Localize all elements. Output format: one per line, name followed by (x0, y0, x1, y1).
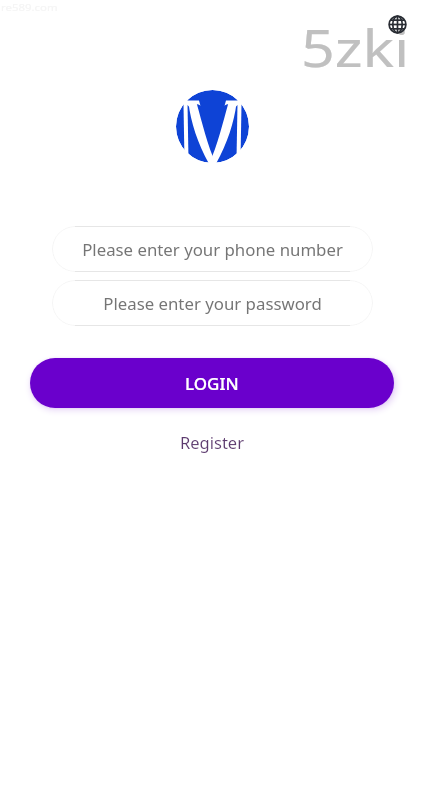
button[interactable]: Language (385, 12, 410, 37)
staticText: LOGIN (185, 372, 239, 395)
staticText: 5zki (301, 13, 410, 82)
button[interactable]: Please enter your phone number (52, 226, 373, 272)
staticText: Please enter your password (103, 292, 322, 315)
button[interactable]: Register (172, 429, 252, 455)
button[interactable]: LOGIN (30, 358, 394, 408)
staticText: re589.com (1, 1, 59, 14)
staticText: Please enter your phone number (82, 238, 343, 261)
staticText: Register (180, 431, 244, 453)
button[interactable]: Please enter your password (52, 280, 373, 326)
